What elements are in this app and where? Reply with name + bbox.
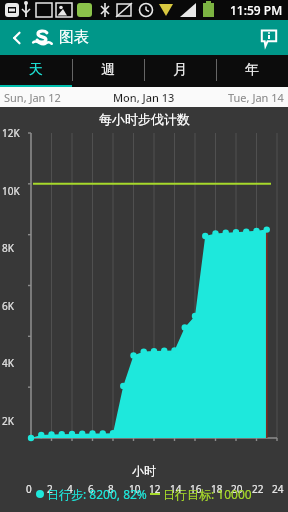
staticText: 每小时步伐计数 xyxy=(99,111,190,127)
staticText: 2 xyxy=(47,482,53,496)
staticText: 小时 xyxy=(132,463,156,478)
staticText: 10 xyxy=(129,482,141,496)
staticText: 12 xyxy=(149,482,161,496)
button[interactable]: 年 xyxy=(216,55,288,85)
staticText: 8 xyxy=(108,482,114,496)
staticText: 22 xyxy=(252,482,264,496)
staticText: 日行目标: 10000 xyxy=(163,486,252,502)
staticText: 12K xyxy=(2,126,20,140)
staticText: 週 xyxy=(101,61,115,79)
staticText: 24 xyxy=(272,482,284,496)
staticText: 日行步: 8200, 82% xyxy=(47,486,147,502)
staticText: 6 xyxy=(88,482,94,496)
button[interactable]: 天 xyxy=(0,55,72,85)
button[interactable]: Mon, Jan 13 xyxy=(96,87,192,107)
staticText: 6K xyxy=(2,299,14,313)
staticText: 天 xyxy=(29,61,43,79)
staticText: 0 xyxy=(26,482,32,496)
button[interactable]: 週 xyxy=(72,55,144,85)
staticText: 月 xyxy=(173,61,187,79)
button[interactable]: Info xyxy=(258,27,280,49)
staticText: 4 xyxy=(67,482,73,496)
staticText: 16 xyxy=(190,482,202,496)
staticText: 14 xyxy=(170,482,182,496)
button[interactable]: 月 xyxy=(144,55,216,85)
staticText: 20 xyxy=(231,482,243,496)
staticText: Sun, Jan 12 xyxy=(4,90,61,105)
staticText: Mon, Jan 13 xyxy=(113,90,175,105)
staticText: 8K xyxy=(2,241,14,255)
staticText: 18 xyxy=(211,482,223,496)
button[interactable]: Tue, Jan 14 xyxy=(192,87,288,107)
button[interactable]: Sun, Jan 12 xyxy=(0,87,96,107)
staticText: 图表 xyxy=(59,28,89,47)
staticText: 年 xyxy=(245,61,259,79)
staticText: Tue, Jan 14 xyxy=(228,90,284,105)
staticText: 4K xyxy=(2,356,14,370)
staticText: 11:59 PM xyxy=(230,2,283,18)
staticText: 2K xyxy=(2,414,14,428)
button[interactable]: Back xyxy=(6,27,28,49)
staticText: 10K xyxy=(2,184,20,198)
